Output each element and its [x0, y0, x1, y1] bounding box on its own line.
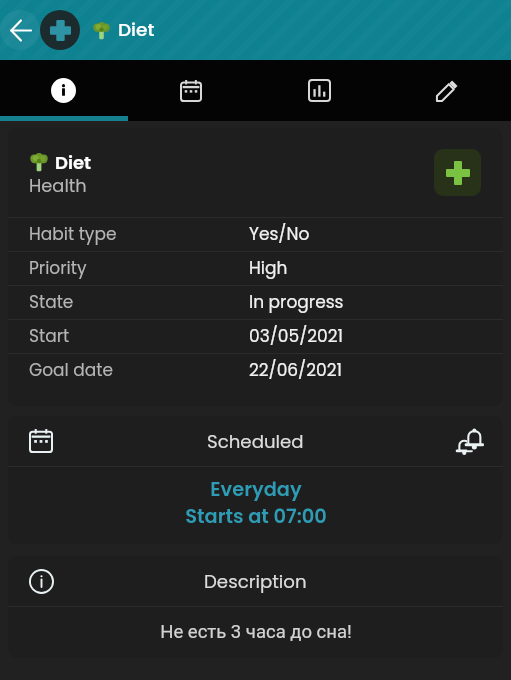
button[interactable]: Back [0, 10, 40, 50]
staticText: Description [204, 569, 307, 594]
button[interactable]: Edit [383, 60, 511, 121]
staticText: Health [29, 173, 87, 196]
staticText: 22/06/2021 [249, 358, 342, 382]
button[interactable]: Add entry [40, 10, 80, 50]
button[interactable]: Habit type [8, 217, 503, 251]
button[interactable]: Reminder [453, 424, 487, 458]
button[interactable]: Details [0, 60, 127, 121]
button[interactable]: Start [8, 319, 503, 353]
staticText: 03/05/2021 [249, 324, 343, 348]
button[interactable]: Priority [8, 251, 503, 285]
staticText: Start [29, 324, 70, 348]
button[interactable]: Schedule [24, 424, 58, 458]
button[interactable]: State [8, 285, 503, 319]
staticText: Goal date [29, 358, 114, 382]
staticText: Habit type [29, 222, 117, 246]
staticText: Diet [55, 150, 91, 173]
staticText: Yes/No [249, 222, 310, 246]
staticText: State [29, 290, 74, 314]
staticText: Не есть 3 часа до сна! [160, 621, 352, 643]
button[interactable]: Goal date [8, 353, 503, 387]
staticText: Diet [118, 17, 155, 43]
button[interactable]: Add habit [434, 149, 481, 196]
button[interactable]: Calendar [127, 60, 255, 121]
button[interactable]: Description [24, 564, 58, 598]
staticText: Starts at 07:00 [185, 503, 327, 530]
staticText: Scheduled [207, 429, 304, 454]
staticText: Priority [29, 256, 87, 280]
button[interactable]: Statistics [255, 60, 383, 121]
staticText: In progress [249, 290, 344, 314]
staticText: High [249, 256, 288, 280]
staticText: Everyday [210, 476, 302, 503]
